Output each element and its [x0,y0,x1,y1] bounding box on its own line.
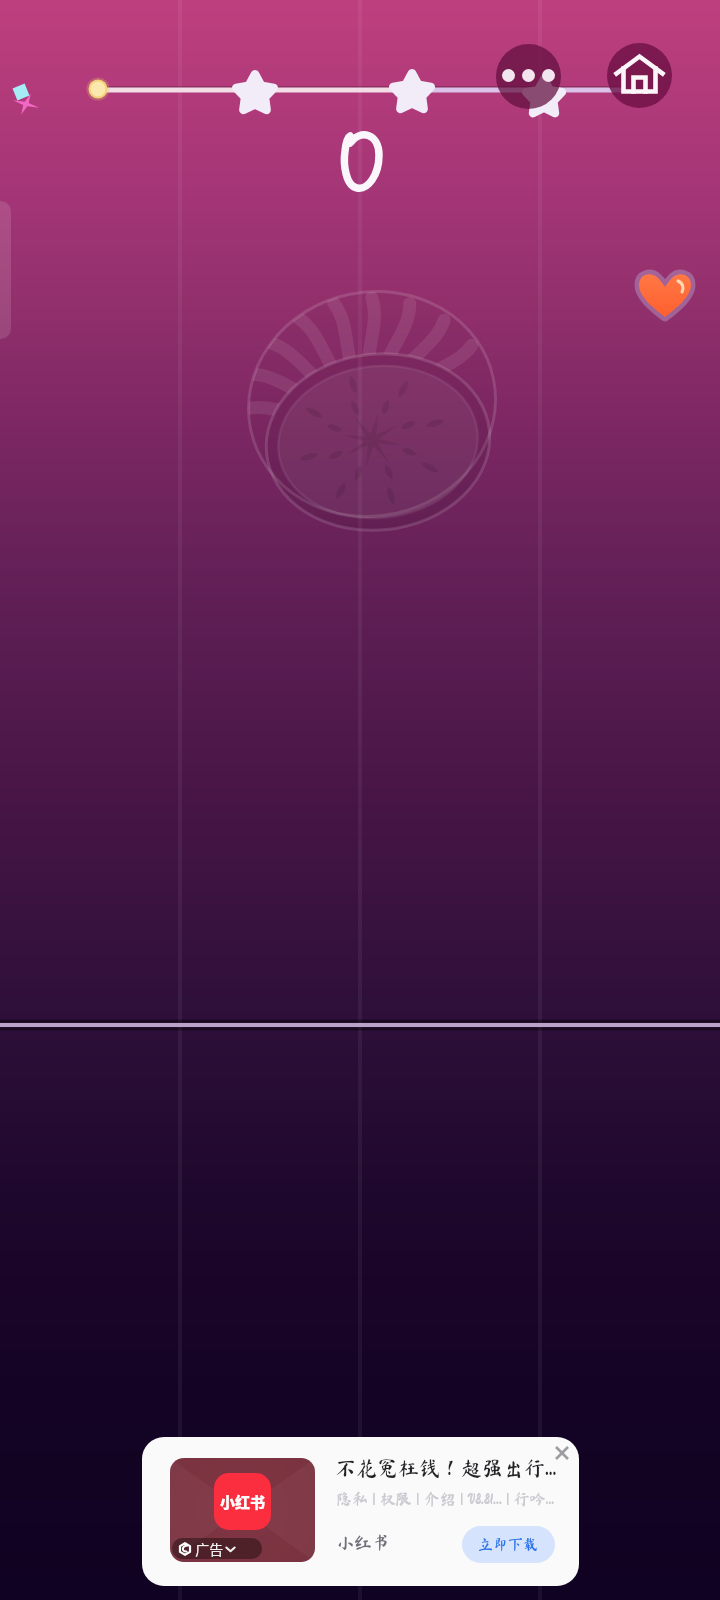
staticText: 小红书 [220,1491,266,1513]
button[interactable]: 立即下载 [462,1526,555,1563]
button[interactable]: Home [607,43,672,108]
button[interactable]: 小红书 [142,1437,579,1586]
staticText: 不花冤枉钱！超强出行… [335,1458,579,1479]
button[interactable]: Open side panel [0,201,11,339]
staticText: 隐私 ǀ 权限 ǀ 介绍 ǀ V8.81... ǀ 行吟… [336,1488,579,1510]
button[interactable]: Ad info [178,1538,257,1559]
staticText: 小红书 [336,1533,390,1551]
staticText: 广告 [192,1539,224,1559]
staticText: 立即下载 [478,1537,539,1552]
button[interactable]: More options [496,44,561,109]
button[interactable]: Close ad [542,1437,579,1473]
